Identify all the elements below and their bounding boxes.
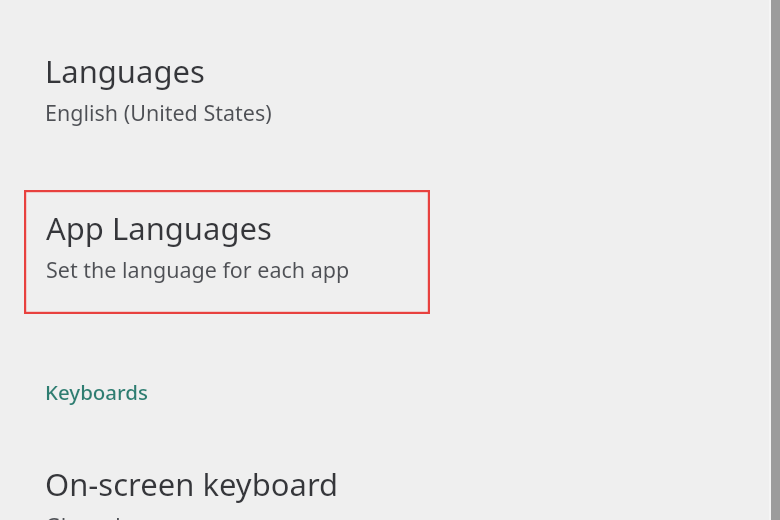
staticText: English (United States) [45,98,272,127]
staticText: Keyboards [45,378,149,406]
staticText: Languages [45,50,205,92]
button[interactable]: Languages [0,42,780,137]
staticText: Gboard [45,511,121,520]
button[interactable]: On-screen keyboard [0,455,780,520]
staticText: On-screen keyboard [45,463,339,505]
staticText: Set the language for each app [46,255,350,284]
button[interactable]: App Languages [0,199,780,294]
staticText: App Languages [46,207,272,249]
